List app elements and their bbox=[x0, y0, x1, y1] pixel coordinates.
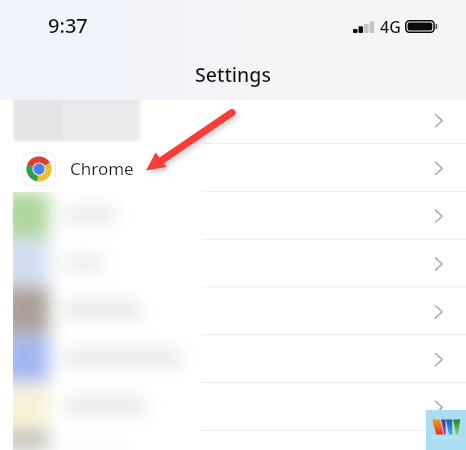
staticText: 4G bbox=[380, 16, 401, 38]
button[interactable]: Chrome bbox=[0, 143, 466, 192]
staticText: Chrome bbox=[70, 157, 134, 180]
staticText: Settings bbox=[195, 61, 271, 88]
other: Arrow pointing at Chrome bbox=[0, 0, 466, 450]
staticText: 9:37 bbox=[48, 12, 88, 39]
